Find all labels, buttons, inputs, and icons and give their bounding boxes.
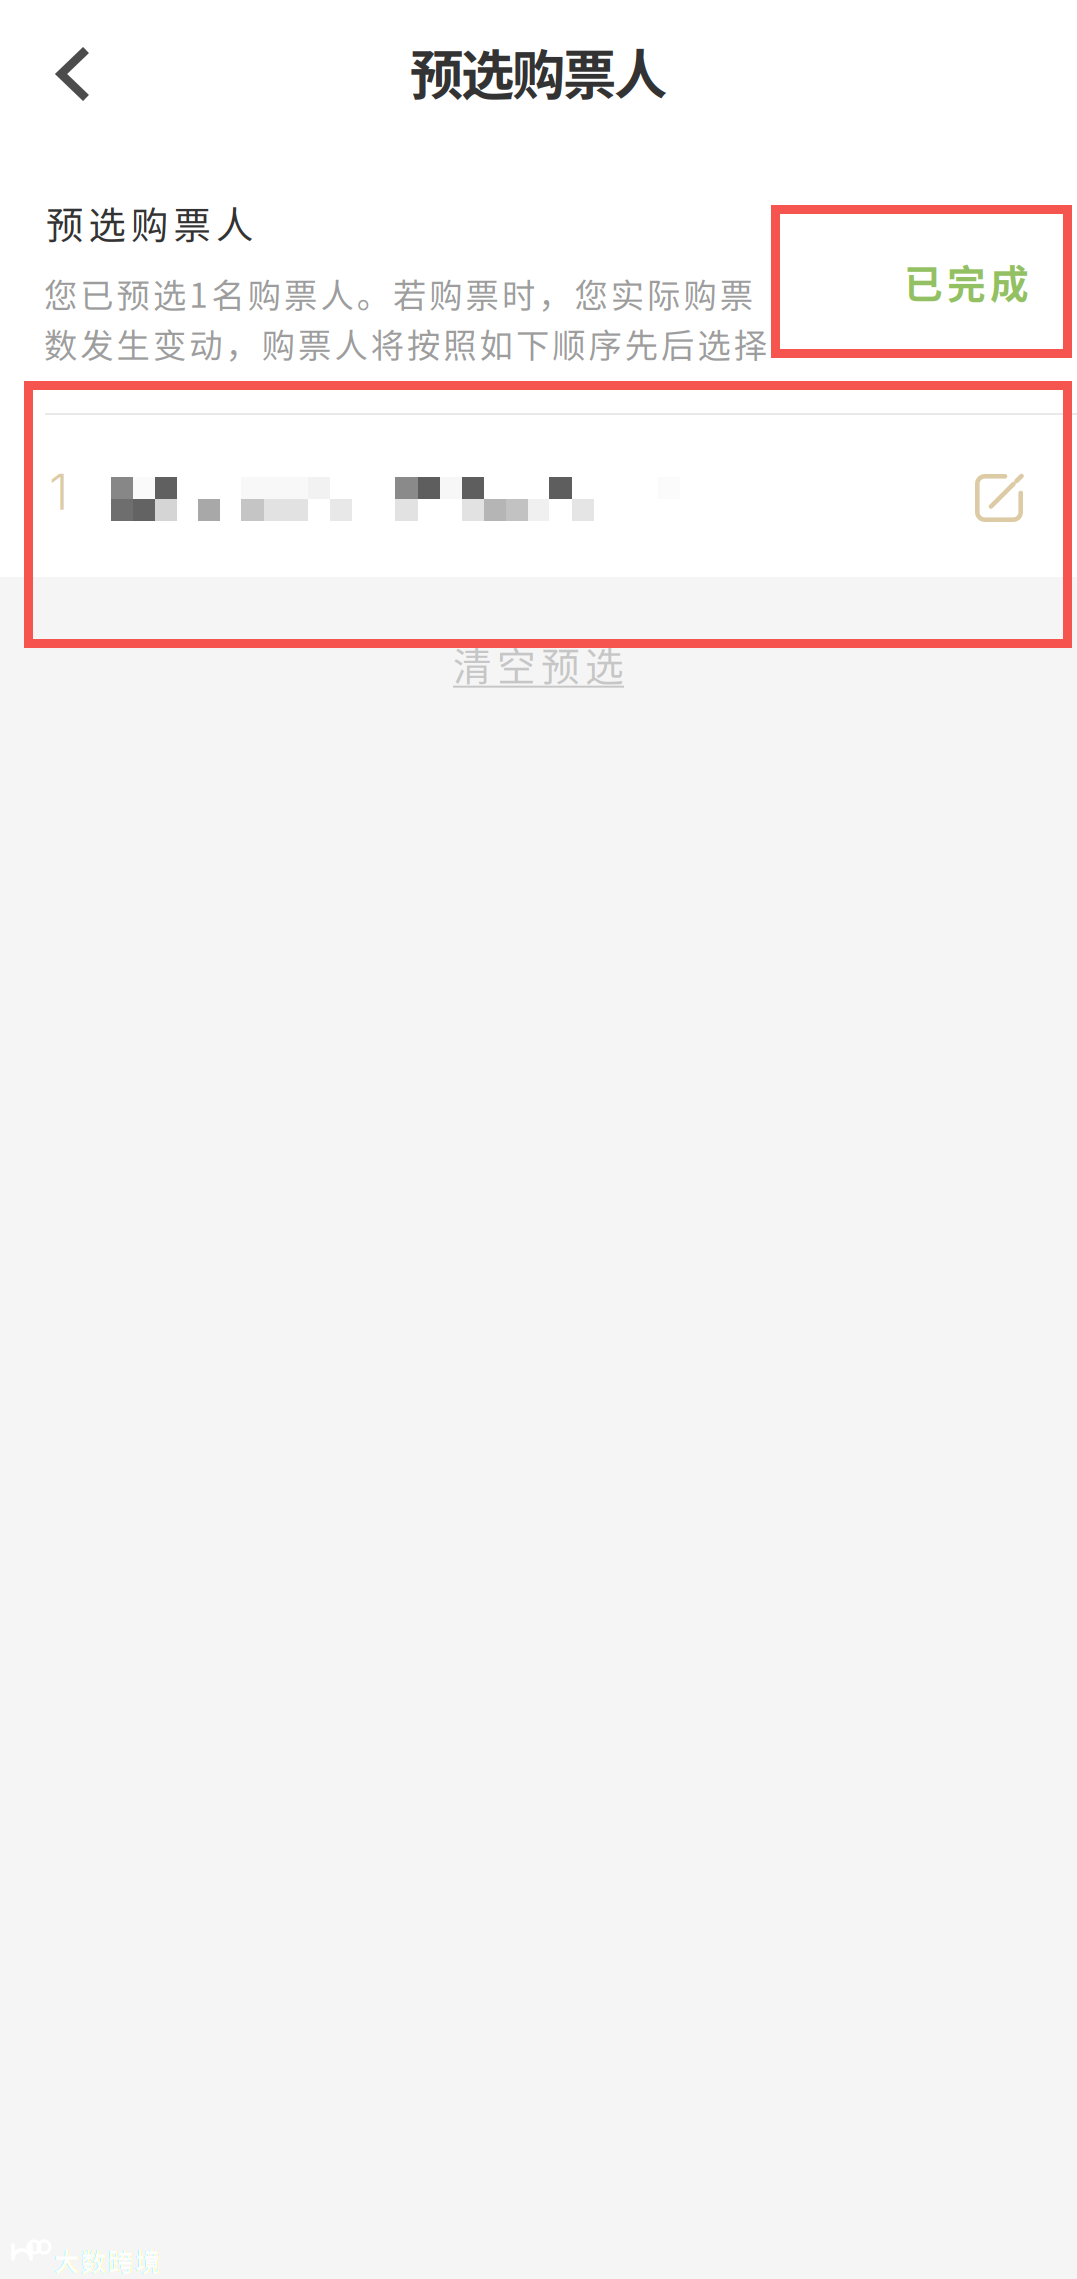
staticText: 数发生变动，购票人将按照如下顺序先后选择: [44, 319, 767, 367]
staticText: 1: [49, 462, 68, 522]
button[interactable]: 已完成: [0, 0, 301, 153]
button[interactable]: 返回: [0, 0, 112, 112]
staticText: 清空预选: [453, 636, 624, 692]
button[interactable]: 1: [0, 0, 1032, 162]
staticText: 预选购票人: [46, 196, 253, 250]
button[interactable]: 清空预选: [0, 0, 1077, 60]
staticText: 已完成: [904, 253, 1029, 309]
staticText: 预选购票人: [410, 33, 667, 110]
staticText: 您已预选1名购票人。若购票时，您实际购票: [44, 269, 753, 317]
staticText: 大数跨境: [54, 2242, 160, 2279]
